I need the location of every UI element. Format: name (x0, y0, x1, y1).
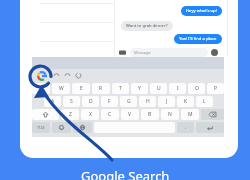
button[interactable]: K (177, 96, 194, 107)
button[interactable]: G (120, 96, 137, 107)
button[interactable]: M (181, 109, 199, 120)
button[interactable]: ?123 (32, 122, 50, 133)
button[interactable]: Google (37, 71, 47, 81)
staticText: M (188, 111, 193, 118)
button[interactable]: H (139, 96, 156, 107)
button[interactable]: Want to grab dinner? (121, 21, 173, 31)
staticText: J (166, 98, 168, 105)
staticText: R (99, 85, 103, 92)
staticText: E (80, 85, 83, 92)
button[interactable]: Refresh (76, 73, 81, 78)
button[interactable]: L (196, 96, 213, 107)
staticText: Q (39, 85, 43, 92)
button[interactable]: Shift (32, 109, 59, 120)
staticText: Want to grab dinner? (126, 23, 168, 29)
staticText: L (203, 98, 206, 105)
staticText: I (177, 85, 179, 92)
button[interactable]: P (207, 83, 224, 94)
staticText: P (214, 85, 218, 92)
staticText: Google Search (81, 167, 170, 180)
staticText: Message (134, 50, 151, 55)
button[interactable]: Redo (65, 73, 70, 78)
button[interactable]: . (177, 122, 194, 133)
button[interactable]: F (101, 96, 118, 107)
staticText: A (51, 98, 55, 105)
button[interactable]: Q (32, 83, 50, 94)
staticText: . (185, 124, 187, 131)
staticText: D (89, 98, 93, 105)
staticText: Heyy what's up! (186, 8, 217, 14)
button[interactable]: J (158, 96, 175, 107)
button[interactable]: Heyy what's up! (181, 6, 222, 16)
button[interactable]: B (141, 109, 159, 120)
button[interactable]: V (121, 109, 139, 120)
button[interactable]: Voice input (211, 49, 218, 56)
button[interactable]: E (72, 83, 90, 94)
button[interactable]: Change language (73, 122, 92, 133)
button[interactable]: Camera (119, 49, 126, 56)
button[interactable]: A (44, 96, 61, 107)
staticText: Y (138, 85, 141, 92)
button[interactable]: D (82, 96, 99, 107)
button[interactable]: W (52, 83, 70, 94)
button[interactable]: C (101, 109, 119, 120)
button[interactable]: Y (131, 83, 148, 94)
staticText: N (168, 111, 172, 118)
staticText: U (157, 85, 161, 92)
button[interactable]: Message (130, 48, 208, 57)
button[interactable]: I (169, 83, 186, 94)
button[interactable]: Undo (54, 73, 59, 78)
button[interactable]: X (81, 109, 99, 120)
button[interactable]: N (161, 109, 179, 120)
staticText: S (70, 98, 73, 105)
staticText: W (59, 85, 64, 92)
button[interactable]: Enter (196, 122, 224, 133)
staticText: T (119, 85, 122, 92)
staticText: F (108, 98, 111, 105)
button[interactable]: Backspace (201, 109, 224, 120)
button[interactable]: Emoji (52, 122, 71, 133)
staticText: ?123 (37, 125, 45, 130)
button[interactable]: U (150, 83, 167, 94)
button[interactable]: S (63, 96, 80, 107)
staticText: Yea! I'll find a place (179, 36, 217, 42)
button[interactable]: Z (61, 109, 79, 120)
button[interactable]: R (92, 83, 110, 94)
button[interactable]: T (112, 83, 129, 94)
staticText: K (184, 98, 188, 105)
staticText: H (146, 98, 150, 105)
button[interactable]: O (188, 83, 205, 94)
button[interactable]: Yea! I'll find a place (174, 34, 222, 44)
staticText: B (148, 111, 152, 118)
staticText: C (108, 111, 112, 118)
staticText: V (128, 111, 132, 118)
staticText: Z (69, 111, 72, 118)
staticText: X (89, 111, 92, 118)
staticText: O (195, 85, 199, 92)
staticText: G (127, 98, 131, 105)
